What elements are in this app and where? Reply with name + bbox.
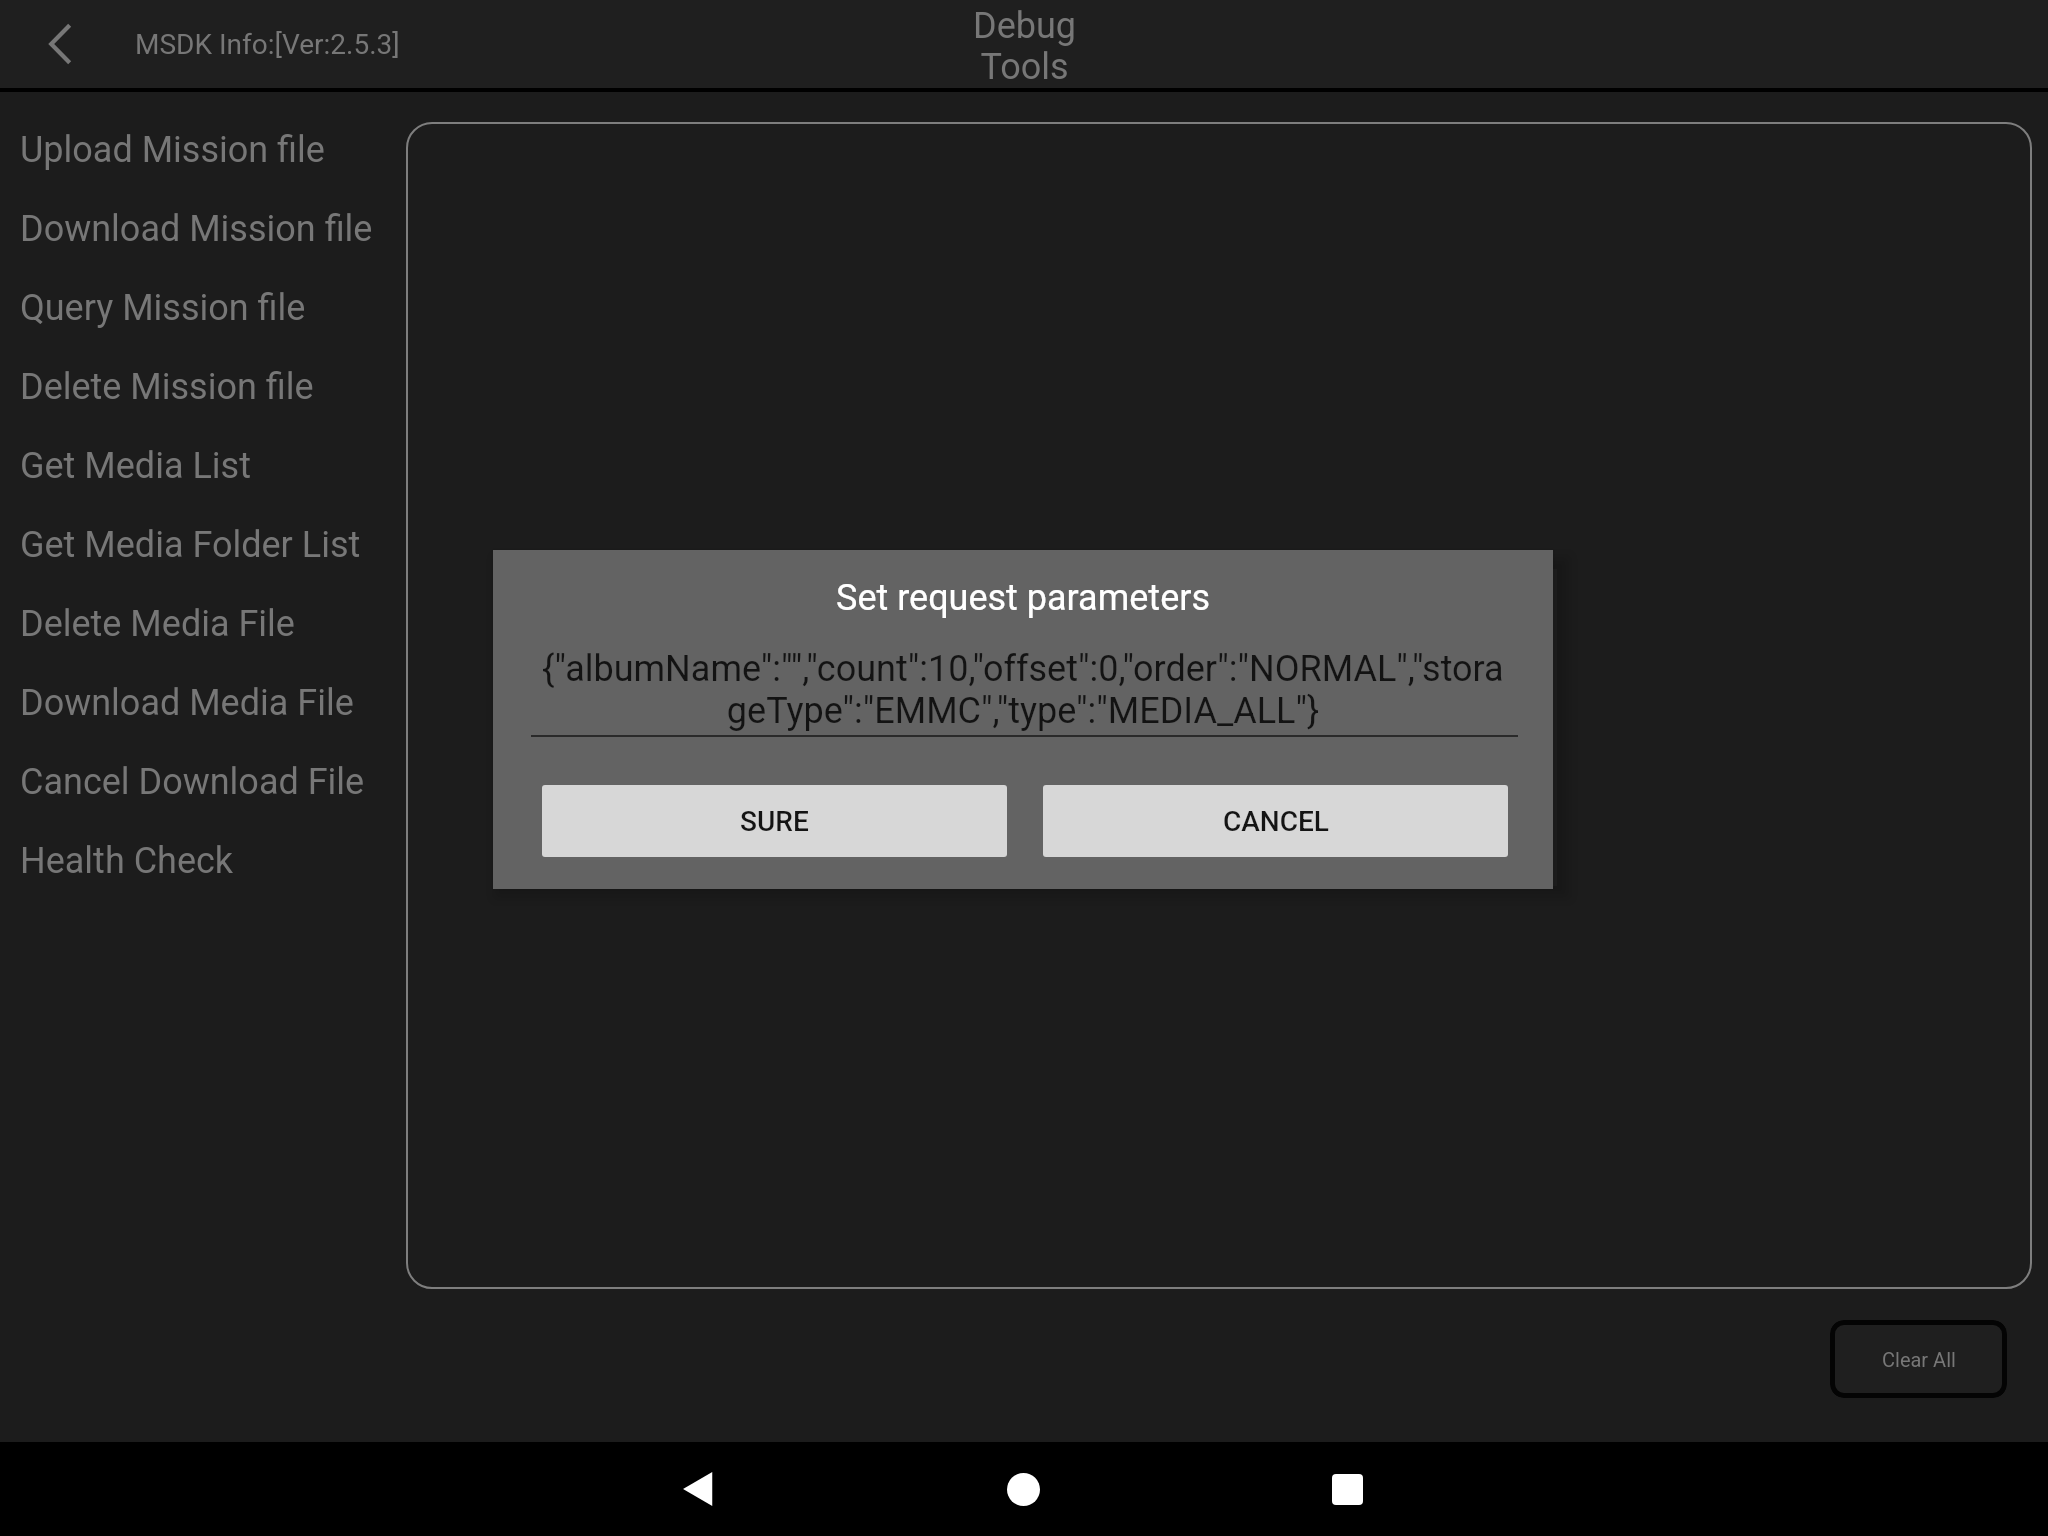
button[interactable]: Download Media File: [0, 663, 400, 742]
staticText: Clear All: [1882, 1348, 1956, 1371]
button[interactable]: Back: [651, 1442, 745, 1536]
staticText: Download Media File: [20, 682, 354, 724]
staticText: Set request parameters: [493, 577, 1553, 619]
button[interactable]: Query Mission file: [0, 268, 400, 347]
staticText: Get Media List: [20, 445, 251, 487]
staticText: Cancel Download File: [20, 761, 365, 803]
button[interactable]: Back: [24, 8, 96, 80]
button[interactable]: Upload Mission file: [0, 110, 400, 189]
button[interactable]: Clear All: [1830, 1320, 2007, 1398]
staticText: {"albumName":"","count":10,"offset":0,"o…: [535, 648, 1511, 732]
button[interactable]: CANCEL: [1043, 785, 1508, 857]
staticText: Get Media Folder List: [20, 524, 361, 566]
button[interactable]: Download Mission file: [0, 189, 400, 268]
staticText: Query Mission file: [20, 287, 306, 329]
staticText: Delete Media File: [20, 603, 295, 645]
staticText: Debug Tools: [973, 5, 1076, 87]
staticText: SURE: [740, 805, 809, 838]
staticText: Delete Mission file: [20, 366, 314, 408]
staticText: Download Mission file: [20, 208, 373, 250]
staticText: Upload Mission file: [20, 129, 325, 171]
button[interactable]: Recent apps: [1300, 1442, 1394, 1536]
staticText: MSDK Info:[Ver:2.5.3]: [135, 28, 400, 61]
button[interactable]: Get Media Folder List: [0, 505, 400, 584]
button[interactable]: Home: [976, 1442, 1070, 1536]
button[interactable]: Get Media List: [0, 426, 400, 505]
button[interactable]: Health Check: [0, 821, 400, 900]
button[interactable]: Delete Mission file: [0, 347, 400, 426]
staticText: CANCEL: [1223, 805, 1329, 838]
button[interactable]: Cancel Download File: [0, 742, 400, 821]
button[interactable]: Delete Media File: [0, 584, 400, 663]
staticText: Health Check: [20, 840, 234, 882]
button[interactable]: SURE: [542, 785, 1007, 857]
